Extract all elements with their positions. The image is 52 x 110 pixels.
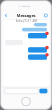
button[interactable]: Send (39, 89, 47, 93)
button[interactable]: Info (44, 14, 49, 17)
button[interactable]: Back (3, 14, 8, 17)
staticText: Messages (16, 13, 35, 18)
staticText: Today 9:41 AM (15, 19, 36, 23)
